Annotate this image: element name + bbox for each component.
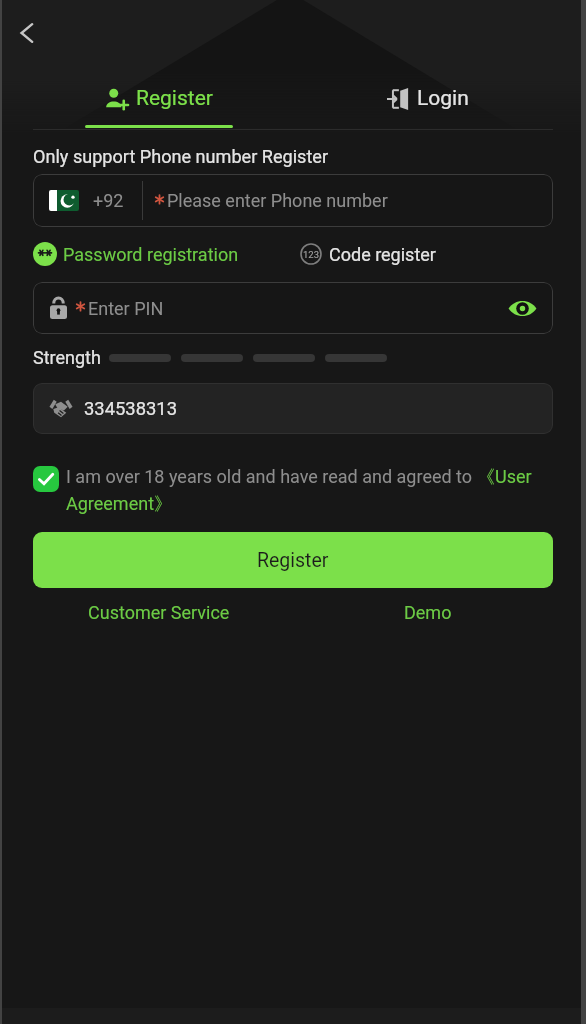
button[interactable]: 123: [300, 243, 436, 265]
staticText: Only support Phone number Register: [33, 146, 329, 167]
button[interactable]: Show PIN: [499, 285, 545, 331]
button[interactable]: Back: [0, 0, 54, 66]
button[interactable]: +92: [33, 174, 553, 227]
button[interactable]: Agreement》: [66, 493, 173, 516]
button[interactable]: 《User: [477, 466, 532, 489]
staticText: Strength: [33, 347, 101, 368]
button[interactable]: Register: [33, 532, 553, 588]
staticText: 334538313: [84, 398, 178, 420]
staticText: 123: [303, 249, 320, 260]
button[interactable]: Agree to user agreement: [33, 466, 59, 492]
button[interactable]: Demo: [404, 602, 452, 623]
staticText: Code register: [329, 244, 436, 265]
staticText: +92: [93, 190, 124, 211]
staticText: Register: [257, 549, 329, 572]
button[interactable]: Customer Service: [88, 602, 230, 623]
staticText: Please enter Phone number: [167, 190, 388, 211]
staticText: Register: [136, 86, 213, 111]
staticText: Enter PIN: [88, 298, 164, 319]
button[interactable]: Register: [24, 66, 293, 130]
button[interactable]: 334538313: [33, 383, 553, 434]
button[interactable]: Enter PIN: [33, 282, 553, 334]
staticText: Login: [417, 86, 469, 111]
button[interactable]: Login: [293, 66, 562, 130]
staticText: Password registration: [63, 244, 239, 265]
staticText: I am over 18 years old and have read and…: [66, 466, 477, 487]
button[interactable]: Password registration: [33, 242, 239, 266]
